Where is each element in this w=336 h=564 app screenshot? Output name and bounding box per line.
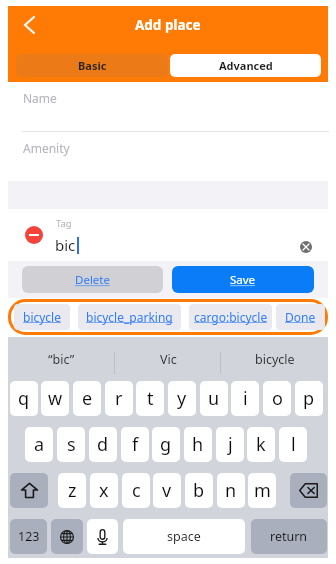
staticText: w (48, 386, 63, 411)
button[interactable]: m (248, 473, 276, 508)
staticText: k (256, 432, 266, 457)
staticText: j (228, 432, 233, 457)
staticText: space (167, 528, 201, 545)
staticText: Vic (160, 351, 177, 368)
button[interactable]: Delete (22, 266, 163, 293)
staticText: 123 (18, 528, 40, 545)
button[interactable]: r (105, 381, 133, 416)
staticText: m (254, 478, 271, 503)
staticText: cargo:bicycle (194, 309, 268, 325)
button[interactable]: b (185, 473, 213, 508)
staticText: Done (285, 309, 316, 325)
button[interactable]: u (200, 381, 228, 416)
staticText: Advanced (219, 58, 273, 73)
staticText: g (160, 432, 172, 457)
button[interactable]: f (121, 427, 149, 462)
staticText: x (99, 478, 109, 503)
button[interactable]: bicycle (221, 337, 328, 381)
button[interactable]: cargo:bicycle (189, 304, 272, 330)
button[interactable]: Vic (115, 337, 222, 381)
staticText: Name (23, 90, 57, 106)
button[interactable]: e (73, 381, 101, 416)
button[interactable]: 123 (10, 519, 47, 554)
button[interactable]: w (41, 381, 69, 416)
button[interactable]: bicycle_parking (78, 304, 181, 330)
staticText: Save (230, 272, 256, 288)
button[interactable]: Advanced (170, 54, 321, 77)
button[interactable]: Shift (10, 473, 48, 508)
button[interactable]: Save (172, 266, 314, 293)
staticText: s (67, 432, 76, 457)
staticText: z (68, 478, 77, 503)
staticText: Amenity (23, 140, 70, 156)
staticText: bicycle (23, 309, 61, 325)
staticText: return (270, 528, 308, 545)
staticText: d (97, 432, 109, 457)
button[interactable]: v (153, 473, 181, 508)
staticText: Basic (78, 58, 107, 73)
staticText: h (192, 432, 204, 457)
staticText: b (193, 478, 205, 503)
button[interactable]: Basic (16, 54, 168, 77)
staticText: y (177, 386, 187, 411)
button[interactable]: bicycle (14, 304, 70, 330)
button[interactable]: Switch keyboard (51, 519, 83, 554)
staticText: i (243, 386, 248, 411)
button[interactable]: p (295, 381, 323, 416)
staticText: bicycle_parking (86, 309, 173, 325)
button[interactable]: return (251, 519, 327, 554)
button[interactable]: q (10, 381, 38, 416)
staticText: o (272, 386, 283, 411)
staticText: v (162, 478, 172, 503)
button[interactable]: i (231, 381, 259, 416)
button[interactable]: g (152, 427, 180, 462)
staticText: Tag (56, 217, 72, 230)
staticText: u (208, 386, 220, 411)
button[interactable]: n (217, 473, 245, 508)
staticText: Add place (135, 16, 201, 34)
button[interactable]: a (25, 427, 53, 462)
button[interactable]: Remove tag (25, 226, 43, 244)
button[interactable]: Backspace (290, 473, 327, 508)
staticText: r (115, 386, 123, 411)
button[interactable]: Clear text (300, 241, 312, 253)
staticText: Delete (75, 272, 110, 288)
staticText: e (82, 386, 93, 411)
staticText: p (303, 386, 315, 411)
button[interactable]: j (216, 427, 244, 462)
button[interactable]: k (247, 427, 275, 462)
staticText: t (147, 386, 154, 411)
staticText: c (132, 478, 141, 503)
staticText: f (132, 432, 139, 457)
button[interactable]: h (184, 427, 212, 462)
staticText: l (291, 432, 296, 457)
button[interactable]: y (168, 381, 196, 416)
button[interactable]: t (136, 381, 164, 416)
button[interactable]: d (89, 427, 117, 462)
staticText: bicycle (255, 351, 295, 368)
button[interactable]: Dictation (87, 519, 118, 554)
button[interactable]: “bic” (8, 337, 115, 381)
button[interactable]: Done (276, 304, 325, 330)
button[interactable]: z (58, 473, 86, 508)
button[interactable]: c (122, 473, 150, 508)
button[interactable]: o (263, 381, 291, 416)
button[interactable]: l (279, 427, 307, 462)
staticText: a (34, 432, 45, 457)
button[interactable]: x (90, 473, 118, 508)
staticText: “bic” (48, 351, 75, 368)
button[interactable]: s (57, 427, 85, 462)
staticText: q (18, 386, 30, 411)
button[interactable]: space (123, 519, 245, 554)
staticText: n (225, 478, 237, 503)
staticText: bic (55, 235, 76, 255)
button[interactable]: Back (16, 12, 42, 38)
